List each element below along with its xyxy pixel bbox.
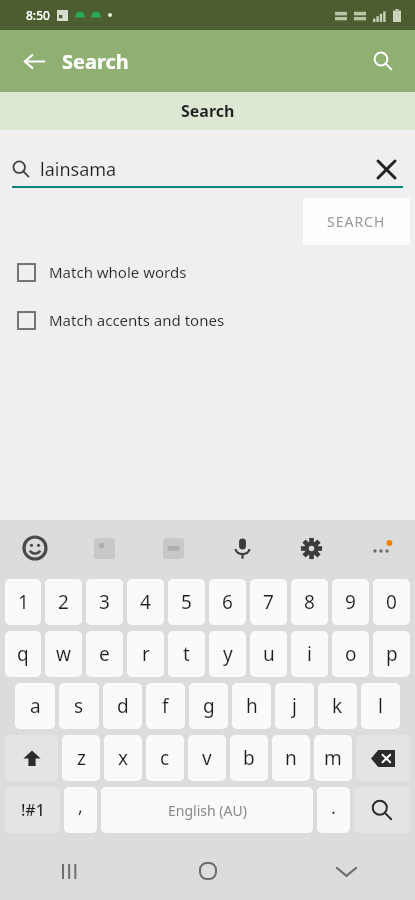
button[interactable]: Search <box>359 37 407 85</box>
button[interactable]: !#1 <box>5 787 60 833</box>
staticText: x <box>118 745 129 771</box>
button[interactable]: l <box>361 683 400 729</box>
staticText: m <box>324 745 342 771</box>
staticText: 7 <box>263 589 274 615</box>
button[interactable]: z <box>62 735 100 781</box>
button[interactable]: s <box>59 683 99 729</box>
button[interactable]: w <box>45 631 82 677</box>
staticText: 2 <box>58 589 69 615</box>
staticText: o <box>345 641 357 667</box>
button[interactable]: Hide keyboard <box>277 842 415 900</box>
staticText: s <box>74 693 84 719</box>
button[interactable]: 9 <box>332 579 369 625</box>
staticText: q <box>17 641 29 667</box>
button[interactable]: e <box>86 631 123 677</box>
staticText: 8 <box>304 589 315 615</box>
staticText: d <box>117 693 129 719</box>
staticText: Search <box>181 100 235 122</box>
button[interactable]: u <box>250 631 287 677</box>
staticText: g <box>203 693 215 719</box>
button[interactable]: 4 <box>127 579 164 625</box>
button[interactable]: r <box>127 631 164 677</box>
button[interactable]: o <box>332 631 369 677</box>
button[interactable]: g <box>189 683 228 729</box>
staticText: lainsama <box>40 157 369 182</box>
button[interactable]: n <box>272 735 310 781</box>
staticText: Match accents and tones <box>49 310 225 330</box>
button[interactable]: 6 <box>209 579 246 625</box>
button[interactable]: Clear <box>369 152 403 186</box>
staticText: w <box>56 641 71 667</box>
button[interactable]: Search <box>354 787 410 833</box>
button[interactable]: a <box>15 683 55 729</box>
button[interactable]: Home <box>139 842 277 900</box>
button[interactable]: More options <box>346 520 415 576</box>
button[interactable]: f <box>146 683 185 729</box>
button[interactable]: GIF <box>139 520 208 576</box>
staticText: k <box>332 693 343 719</box>
staticText: p <box>386 641 398 667</box>
button[interactable]: i <box>291 631 328 677</box>
staticText: v <box>202 745 212 771</box>
staticText: e <box>99 641 110 667</box>
staticText: 6 <box>222 589 233 615</box>
button[interactable]: 8 <box>291 579 328 625</box>
staticText: 5 <box>181 589 192 615</box>
staticText: 9 <box>345 589 356 615</box>
button[interactable]: v <box>188 735 226 781</box>
button[interactable]: 7 <box>250 579 287 625</box>
staticText: r <box>142 641 150 667</box>
button[interactable]: Match whole words <box>0 257 415 287</box>
button[interactable]: Voice input <box>208 520 277 576</box>
button[interactable]: 3 <box>86 579 123 625</box>
staticText: h <box>246 693 258 719</box>
staticText: 3 <box>99 589 110 615</box>
staticText: l <box>378 693 383 719</box>
button[interactable]: 5 <box>168 579 205 625</box>
button[interactable]: Recents <box>0 842 139 900</box>
button[interactable]: b <box>230 735 268 781</box>
button[interactable]: j <box>275 683 314 729</box>
button[interactable]: Keyboard settings <box>277 520 346 576</box>
button[interactable]: x <box>104 735 142 781</box>
staticText: a <box>30 693 41 719</box>
staticText: y <box>223 641 233 667</box>
button[interactable]: t <box>168 631 205 677</box>
staticText: u <box>263 641 275 667</box>
staticText: Search <box>62 48 129 75</box>
button[interactable]: Back <box>10 37 58 85</box>
staticText: SEARCH <box>327 212 386 231</box>
button[interactable]: c <box>146 735 184 781</box>
button[interactable]: Backspace <box>356 735 410 781</box>
button[interactable]: 2 <box>45 579 82 625</box>
staticText: 4 <box>140 589 151 615</box>
staticText: , <box>78 794 83 819</box>
staticText: c <box>160 745 170 771</box>
button[interactable]: SEARCH <box>303 198 410 245</box>
button[interactable]: d <box>103 683 142 729</box>
staticText: f <box>162 693 169 719</box>
button[interactable]: y <box>209 631 246 677</box>
staticText: j <box>292 693 297 719</box>
button[interactable]: , <box>64 787 97 833</box>
button[interactable]: Match accents and tones <box>0 305 415 335</box>
button[interactable]: Emoji <box>0 520 70 576</box>
button[interactable]: 1 <box>5 579 41 625</box>
staticText: t <box>183 641 190 667</box>
button[interactable]: Stickers <box>70 520 139 576</box>
staticText: z <box>77 745 86 771</box>
button[interactable]: p <box>373 631 410 677</box>
button[interactable]: Shift <box>5 735 58 781</box>
staticText: . <box>331 795 336 820</box>
button[interactable]: English (AU) <box>101 787 313 833</box>
staticText: !#1 <box>21 799 45 821</box>
staticText: 0 <box>386 589 397 615</box>
button[interactable]: k <box>318 683 357 729</box>
button[interactable]: m <box>314 735 352 781</box>
button[interactable]: h <box>232 683 271 729</box>
staticText: 8:50 <box>26 7 50 23</box>
staticText: Match whole words <box>49 262 187 282</box>
button[interactable]: 0 <box>373 579 410 625</box>
button[interactable]: . <box>317 787 350 833</box>
button[interactable]: q <box>5 631 41 677</box>
